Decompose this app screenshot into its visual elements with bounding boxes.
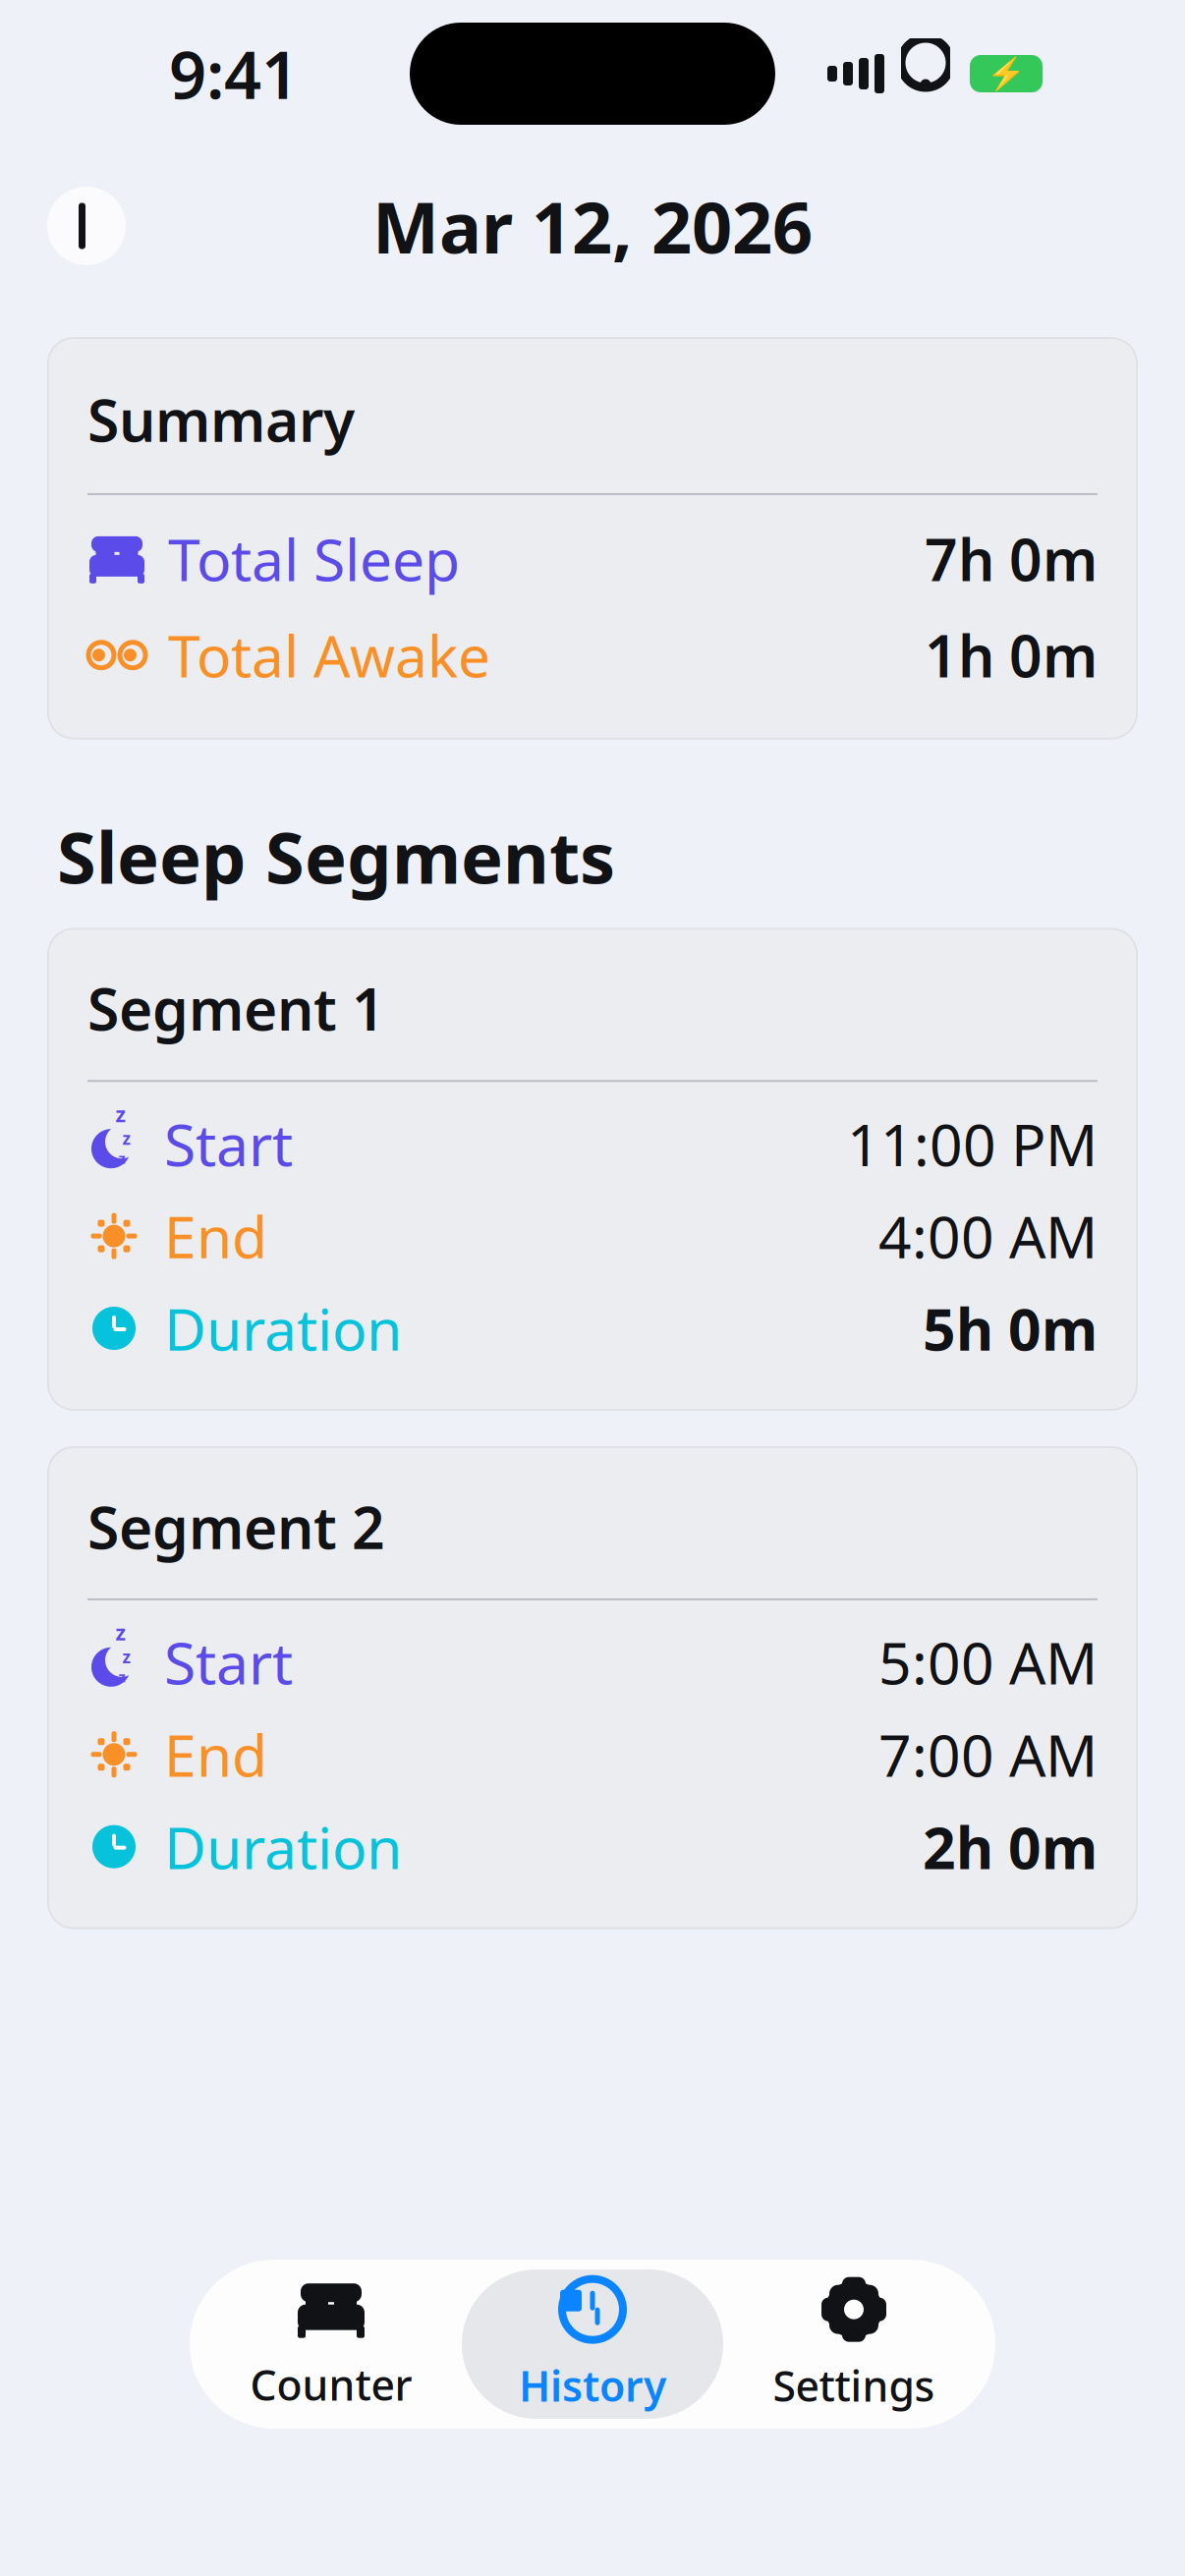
staticText: Total Awake [168,617,490,693]
staticText: Start [164,1624,293,1700]
staticText: End [164,1198,267,1274]
staticText: z [118,1667,125,1686]
staticText: 5:00 AM [878,1624,1098,1700]
staticText: 5h 0m [923,1290,1098,1367]
staticText: Counter [250,2357,412,2412]
staticText: z [118,1149,125,1168]
staticText: 2h 0m [923,1808,1098,1885]
button[interactable]: Back [39,179,134,273]
staticText: Summary [87,381,355,458]
staticText: 1h 0m [925,617,1098,693]
staticText: Start [164,1105,293,1182]
staticText: Duration [164,1808,402,1885]
staticText: z [122,1645,131,1668]
staticText: 7h 0m [925,521,1098,597]
staticText: Sleep Segments [57,809,615,903]
staticText: z [122,1127,131,1150]
staticText: Total Sleep [168,521,460,597]
staticText: Settings [773,2358,935,2413]
staticText: 7:00 AM [878,1716,1098,1793]
staticText: Segment 2 [87,1488,385,1565]
button[interactable]: History [462,2269,723,2419]
staticText: 11:00 PM [847,1105,1098,1182]
staticText: History [519,2358,666,2413]
button[interactable]: Settings [723,2269,985,2419]
staticText: 4:00 AM [878,1198,1098,1274]
staticText: ⚡ [987,56,1026,92]
staticText: Duration [164,1290,402,1367]
staticText: Segment 1 [87,970,385,1047]
staticText: End [164,1716,267,1793]
staticText: z [115,1618,126,1646]
button[interactable]: Counter [200,2269,462,2419]
staticText: 9:41 [169,30,299,117]
staticText: z [115,1100,126,1128]
staticText: Mar 12, 2026 [372,179,813,273]
